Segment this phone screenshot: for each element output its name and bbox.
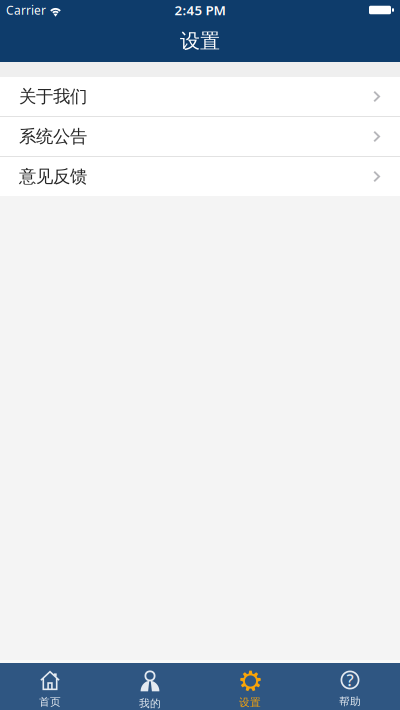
button[interactable]: 首页 bbox=[0, 663, 100, 710]
staticText: 设置 bbox=[180, 29, 220, 53]
staticText: ? bbox=[346, 669, 353, 691]
button[interactable]: 意见反馈 bbox=[0, 157, 400, 196]
staticText: 意见反馈 bbox=[19, 166, 87, 187]
staticText: Carrier bbox=[6, 2, 46, 18]
staticText: 2:45 PM bbox=[174, 1, 225, 19]
staticText: 设置 bbox=[239, 696, 261, 709]
button[interactable]: 设置 bbox=[200, 663, 300, 710]
staticText: 我的 bbox=[139, 697, 161, 710]
button[interactable]: 帮助 bbox=[300, 663, 400, 710]
button[interactable]: 关于我们 bbox=[0, 77, 400, 116]
staticText: 帮助 bbox=[339, 695, 361, 708]
staticText: 首页 bbox=[39, 695, 61, 709]
button[interactable]: 系统公告 bbox=[0, 117, 400, 156]
button[interactable]: 我的 bbox=[100, 663, 200, 710]
staticText: 关于我们 bbox=[19, 86, 87, 107]
staticText: 系统公告 bbox=[19, 126, 87, 147]
